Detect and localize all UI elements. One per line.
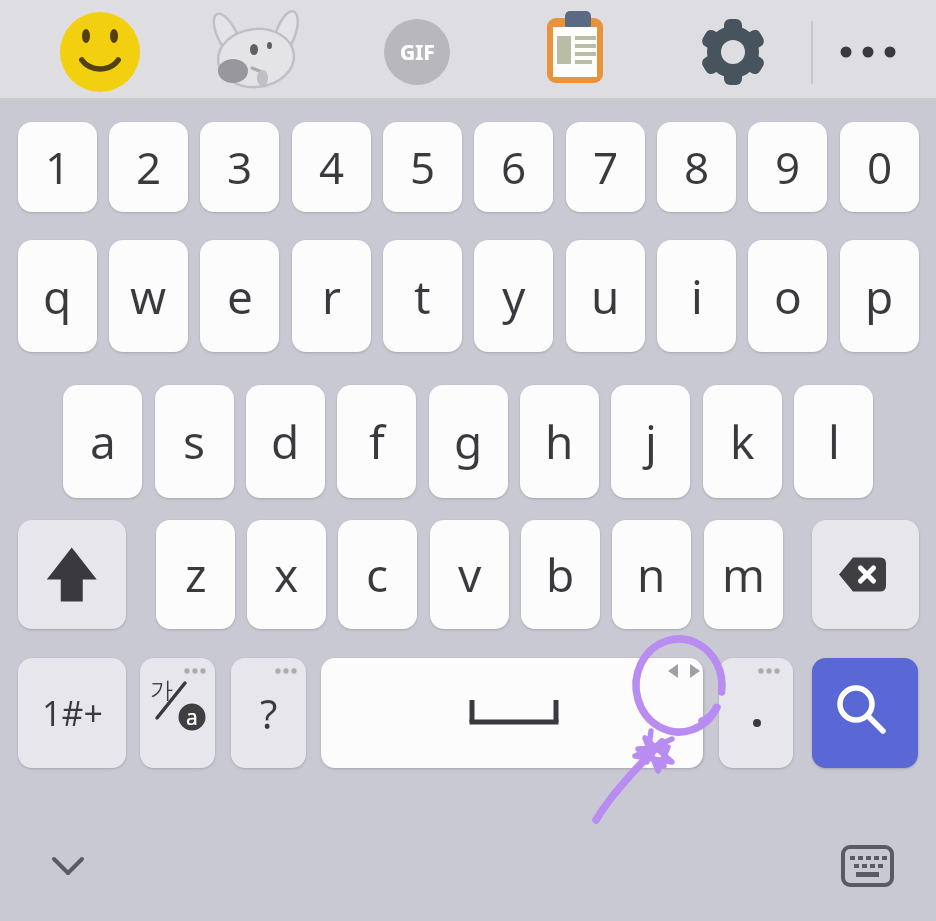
staticText: z — [185, 543, 207, 606]
button[interactable]: x — [247, 520, 326, 629]
button[interactable]: q — [18, 240, 97, 352]
staticText: a — [90, 410, 116, 473]
button[interactable] — [0, 0, 936, 98]
button[interactable]: f — [337, 385, 416, 498]
staticText: l — [828, 410, 840, 473]
button[interactable] — [812, 520, 919, 629]
button[interactable]: i — [657, 240, 736, 352]
button[interactable]: u — [566, 240, 645, 352]
button[interactable]: 0 — [840, 122, 919, 212]
button[interactable]: a — [63, 385, 142, 498]
staticText: w — [130, 265, 167, 328]
button[interactable]: p — [840, 240, 919, 352]
staticText: y — [502, 265, 526, 328]
button[interactable]: s — [155, 385, 234, 498]
button[interactable]: h — [520, 385, 599, 498]
staticText: u — [591, 265, 620, 328]
staticText: h — [545, 410, 574, 473]
staticText: j — [645, 410, 657, 473]
button[interactable]: w — [109, 240, 188, 352]
button[interactable] — [812, 658, 918, 768]
button[interactable]: o — [748, 240, 827, 352]
staticText: i — [691, 265, 703, 328]
staticText: k — [730, 410, 755, 473]
button[interactable]: v — [430, 520, 509, 629]
staticText: c — [366, 543, 389, 606]
button[interactable]: c — [338, 520, 417, 629]
button[interactable]: 8 — [657, 122, 736, 212]
button[interactable]: 7 — [566, 122, 645, 212]
staticText: x — [274, 543, 299, 606]
button[interactable]: 5 — [383, 122, 462, 212]
button[interactable]: 1#+ — [18, 658, 126, 768]
button[interactable] — [719, 658, 793, 768]
staticText: 2 — [136, 137, 162, 197]
button[interactable]: 2 — [109, 122, 188, 212]
staticText: v — [458, 543, 482, 606]
staticText: s — [183, 410, 206, 473]
staticText: 1 — [45, 137, 71, 197]
button[interactable] — [321, 658, 703, 768]
staticText: n — [637, 543, 666, 606]
button[interactable]: l — [794, 385, 873, 498]
button[interactable]: y — [474, 240, 553, 352]
staticText: g — [454, 410, 483, 473]
staticText: d — [271, 410, 300, 473]
staticText: 5 — [410, 137, 436, 197]
staticText: q — [43, 265, 72, 328]
button[interactable]: t — [383, 240, 462, 352]
button[interactable]: GIF — [384, 19, 450, 85]
button[interactable]: 4 — [292, 122, 371, 212]
button[interactable]: z — [156, 520, 235, 629]
staticText: 7 — [593, 137, 619, 197]
button[interactable]: k — [703, 385, 782, 498]
button[interactable]: ? — [231, 658, 306, 768]
staticText: 9 — [775, 137, 801, 197]
staticText: 8 — [684, 137, 710, 197]
button[interactable]: 9 — [748, 122, 827, 212]
staticText: 3 — [227, 137, 253, 197]
staticText: ? — [260, 686, 278, 740]
button[interactable]: 6 — [474, 122, 553, 212]
staticText: 가 — [150, 676, 173, 705]
button[interactable]: b — [521, 520, 600, 629]
button[interactable]: e — [200, 240, 279, 352]
button[interactable] — [18, 520, 126, 629]
staticText: GIF — [400, 38, 435, 67]
button[interactable]: j — [611, 385, 690, 498]
staticText: 0 — [867, 137, 893, 197]
staticText: r — [322, 265, 341, 328]
button[interactable]: 3 — [200, 122, 279, 212]
staticText: f — [369, 410, 385, 473]
staticText: t — [414, 265, 431, 328]
staticText: 6 — [501, 137, 527, 197]
button[interactable]: 가 — [140, 658, 215, 768]
staticText: e — [227, 265, 253, 328]
button[interactable]: m — [704, 520, 783, 629]
button[interactable]: n — [612, 520, 691, 629]
button[interactable]: 1 — [18, 122, 97, 212]
staticText: o — [774, 265, 802, 328]
button[interactable]: r — [292, 240, 371, 352]
staticText: b — [546, 543, 575, 606]
button[interactable]: g — [429, 385, 508, 498]
button[interactable]: d — [246, 385, 325, 498]
staticText: m — [722, 543, 766, 606]
staticText: a — [186, 703, 198, 732]
staticText: 4 — [319, 137, 345, 197]
staticText: 1#+ — [42, 690, 103, 736]
staticText: p — [865, 265, 894, 328]
